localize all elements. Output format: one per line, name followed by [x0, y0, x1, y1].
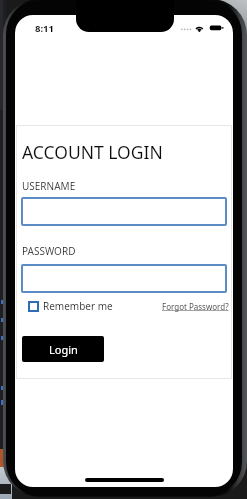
staticText: PASSWORD: [22, 244, 76, 258]
button[interactable]: Forgot Password?: [97, 301, 229, 312]
button[interactable]: Login: [22, 336, 104, 362]
button[interactable]: [21, 197, 227, 226]
staticText: USERNAME: [22, 179, 76, 193]
staticText: ACCOUNT LOGIN: [22, 140, 163, 164]
staticText: Remember me: [43, 299, 113, 313]
staticText: Forgot Password?: [162, 301, 229, 312]
staticText: Login: [49, 342, 78, 357]
button[interactable]: Remember me: [28, 299, 113, 313]
staticText: 8:11: [35, 22, 54, 35]
button[interactable]: [21, 264, 227, 293]
